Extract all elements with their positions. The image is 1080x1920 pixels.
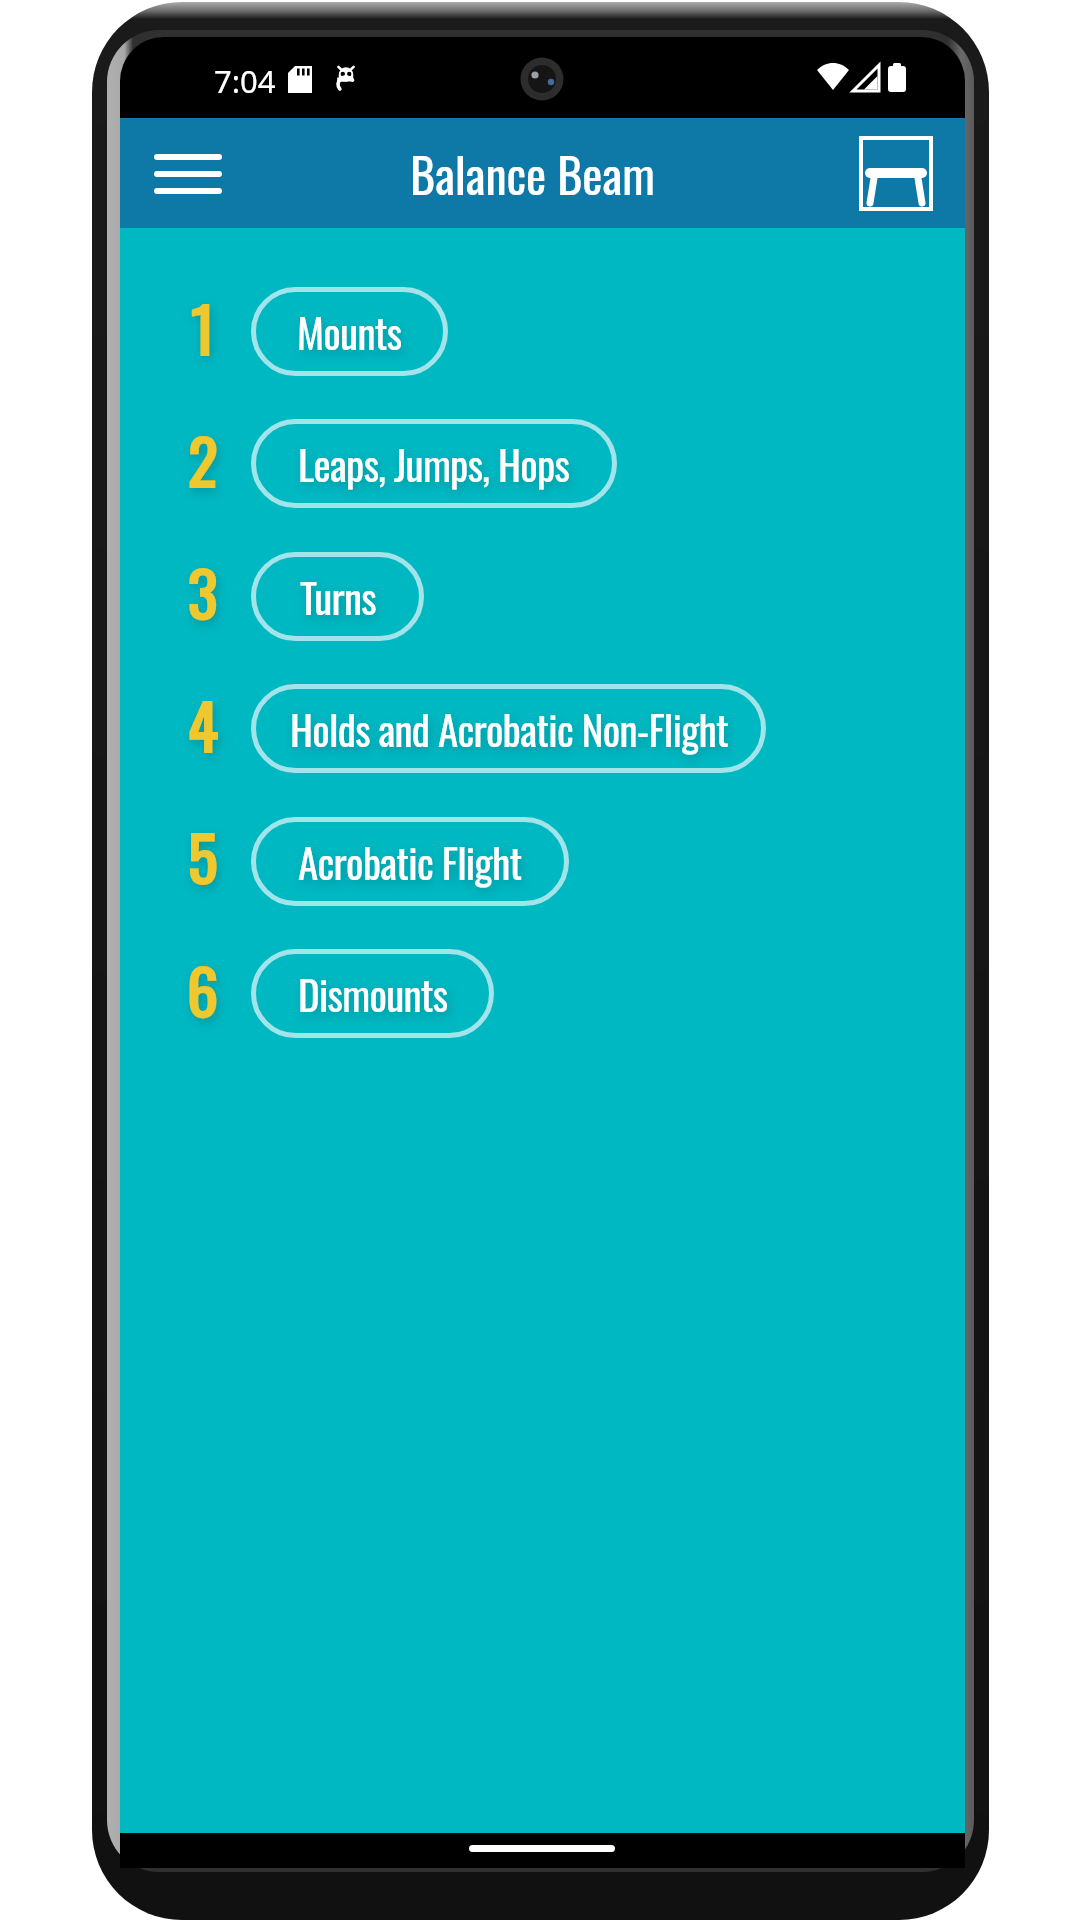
staticText: 7:04 <box>214 60 276 102</box>
staticText: 1 <box>191 281 215 373</box>
staticText: 5 <box>188 810 218 902</box>
staticText: Acrobatic Flight <box>298 831 522 892</box>
button[interactable]: Turns <box>251 552 424 641</box>
staticText: Mounts <box>297 301 402 362</box>
button[interactable]: Leaps, Jumps, Hops <box>251 419 617 508</box>
staticText: 6 <box>187 943 219 1035</box>
staticText: 2 <box>188 413 218 505</box>
button[interactable]: Acrobatic Flight <box>251 817 569 906</box>
button[interactable]: Mounts <box>251 287 448 376</box>
button[interactable] <box>138 138 238 210</box>
button[interactable]: Dismounts <box>251 949 494 1038</box>
button[interactable] <box>859 136 933 211</box>
staticText: Leaps, Jumps, Hops <box>298 433 570 494</box>
staticText: 3 <box>188 545 218 637</box>
staticText: Dismounts <box>298 963 448 1024</box>
staticText: Holds and Acrobatic Non-Flight <box>290 698 728 759</box>
staticText: Turns <box>300 566 376 627</box>
button[interactable]: Holds and Acrobatic Non-Flight <box>251 684 766 773</box>
staticText: Balance Beam <box>410 138 655 209</box>
staticText: 4 <box>188 678 218 770</box>
